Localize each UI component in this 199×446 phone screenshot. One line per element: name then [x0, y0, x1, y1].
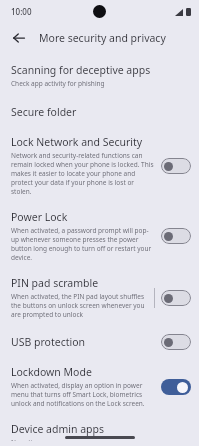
staticText: Device admin apps [11, 422, 105, 436]
staticText: Scanning for deceptive apps [11, 63, 151, 77]
button[interactable]: Lockdown Mode [0, 362, 199, 412]
button[interactable]: Scanning for deceptive apps [0, 60, 199, 94]
staticText: Check app activity for phishing [11, 79, 105, 88]
button[interactable]: Secure folder [0, 102, 199, 124]
staticText: When activated, the PIN pad layout shuff… [11, 292, 154, 319]
staticText: 10:00 [11, 6, 32, 17]
button[interactable]: Back [7, 26, 31, 50]
button[interactable]: PIN pad scramble [0, 273, 199, 323]
button[interactable]: PIN pad scramble [161, 290, 191, 306]
staticText: Lockdown Mode [11, 365, 92, 379]
button[interactable]: USB protection [0, 330, 199, 354]
button[interactable]: Lock Network and Security [0, 132, 199, 200]
staticText: PIN pad scramble [11, 276, 99, 290]
button[interactable]: USB protection [161, 334, 191, 350]
staticText: When activated, display an option in pow… [11, 381, 154, 408]
staticText: Power Lock [11, 210, 68, 224]
staticText: Lock Network and Security [11, 135, 143, 149]
staticText: USB protection [11, 335, 86, 349]
staticText: Secure folder [11, 105, 77, 119]
button[interactable]: Power Lock [161, 228, 191, 244]
staticText: More security and privacy [39, 31, 166, 45]
button[interactable]: Power Lock [0, 207, 199, 266]
staticText: No active apps [11, 438, 56, 441]
button[interactable]: Lock Network and Security [161, 158, 191, 174]
staticText: When activated, a password prompt will p… [11, 226, 154, 262]
staticText: Network and security-related functions c… [11, 151, 154, 196]
button[interactable]: Lockdown Mode [161, 379, 191, 395]
button[interactable]: Device admin apps [0, 419, 199, 446]
